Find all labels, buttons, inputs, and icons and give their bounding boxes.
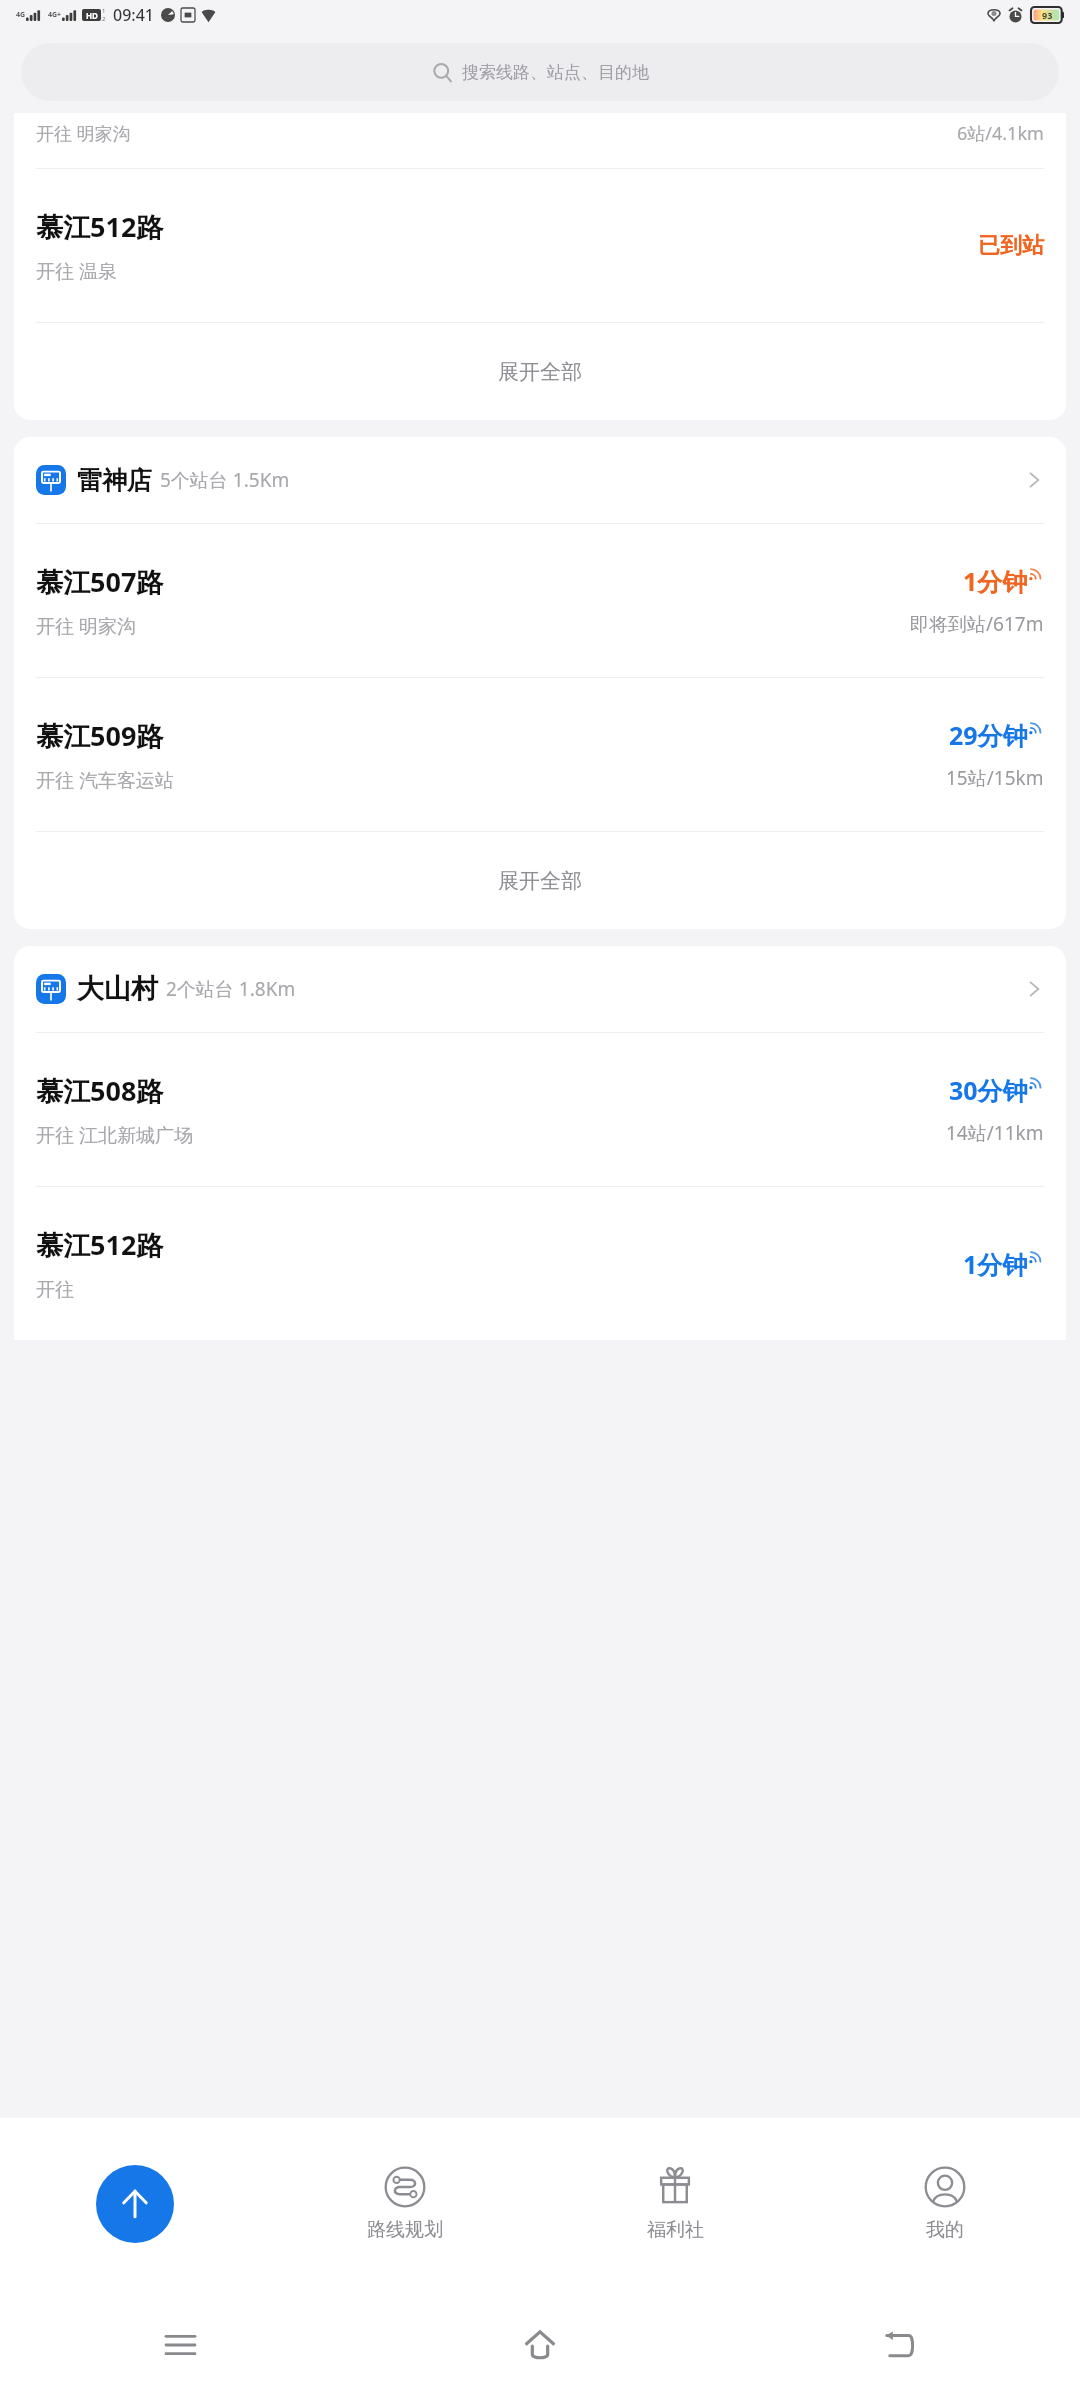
button[interactable]: 慕江512路: [14, 1187, 1066, 1340]
staticText: 雷神店: [77, 465, 152, 496]
staticText: 29分钟: [949, 718, 1028, 752]
staticText: 搜索线路、站点、目的地: [462, 62, 649, 83]
staticText: 展开全部: [498, 868, 582, 894]
staticText: 1分钟: [963, 1247, 1028, 1281]
button[interactable]: 雷神店: [14, 437, 1066, 523]
staticText: 开往 明家沟: [36, 121, 131, 146]
staticText: 慕江509路: [36, 717, 164, 754]
staticText: 即将到站/617m: [910, 611, 1044, 637]
staticText: 1: [102, 7, 106, 15]
staticText: 14站/11km: [946, 1120, 1044, 1146]
staticText: 慕江512路: [36, 208, 164, 245]
button[interactable]: Home: [360, 2290, 720, 2400]
staticText: 开往 汽车客运站: [36, 767, 174, 793]
staticText: 2: [102, 15, 106, 23]
staticText: 6站/4.1km: [957, 121, 1044, 146]
staticText: HD: [86, 10, 98, 21]
staticText: 开往 明家沟: [36, 613, 136, 639]
staticText: 已到站: [978, 232, 1044, 260]
button[interactable]: 展开全部: [14, 323, 1066, 420]
button[interactable]: 搜索线路、站点、目的地: [21, 43, 1059, 101]
staticText: 大山村: [77, 972, 158, 1006]
button[interactable]: Recents: [0, 2290, 360, 2400]
button[interactable]: 慕江509路: [14, 678, 1066, 831]
button[interactable]: Back: [720, 2290, 1080, 2400]
button[interactable]: 我的: [810, 2118, 1080, 2290]
staticText: 慕江508路: [36, 1072, 164, 1109]
staticText: 2个站台 1.8Km: [166, 976, 296, 1002]
button[interactable]: 福利社: [540, 2118, 810, 2290]
staticText: 路线规划: [367, 2218, 443, 2242]
staticText: 慕江507路: [36, 563, 164, 600]
button[interactable]: 路线规划: [270, 2118, 540, 2290]
staticText: 慕江512路: [36, 1226, 164, 1263]
staticText: 1分钟: [963, 564, 1028, 598]
staticText: 5个站台 1.5Km: [160, 467, 290, 493]
staticText: 4G: [16, 10, 26, 20]
button[interactable]: 开往 明家沟: [14, 113, 1066, 420]
staticText: 开往 江北新城广场: [36, 1122, 193, 1148]
staticText: 15站/15km: [946, 765, 1044, 791]
staticText: 开往: [36, 1276, 79, 1302]
button[interactable]: 慕江508路: [14, 1033, 1066, 1186]
button[interactable]: 大山村: [14, 946, 1066, 1032]
button[interactable]: 慕江512路: [14, 169, 1066, 322]
staticText: 93: [1042, 9, 1053, 21]
staticText: 展开全部: [498, 359, 582, 385]
staticText: 30分钟: [949, 1073, 1028, 1107]
button[interactable]: 慕江507路: [14, 524, 1066, 677]
staticText: 4G+: [48, 10, 62, 20]
staticText: 福利社: [647, 2218, 704, 2242]
button[interactable]: 返回顶部: [96, 2165, 174, 2243]
button[interactable]: 展开全部: [14, 832, 1066, 929]
staticText: 我的: [926, 2218, 964, 2242]
staticText: 09:41: [113, 4, 154, 26]
staticText: 开往 温泉: [36, 258, 117, 284]
